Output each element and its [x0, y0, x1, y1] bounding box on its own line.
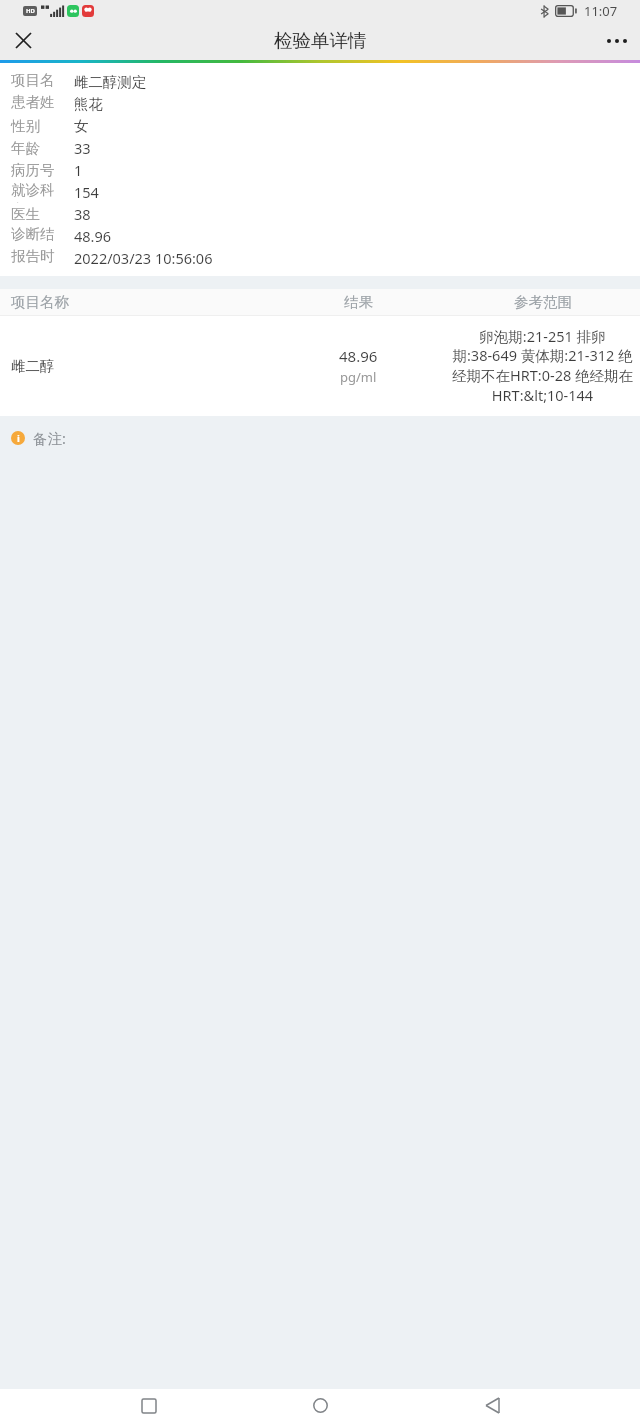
staticText: 项目名称 — [11, 71, 68, 93]
staticText: 报告时间 — [11, 247, 68, 269]
staticText: 11:07 — [584, 2, 618, 20]
staticText: 154 — [74, 182, 99, 202]
staticText: 患者姓名 — [11, 93, 68, 115]
staticText: 病历号 — [11, 161, 55, 179]
staticText: 48.96 — [74, 226, 112, 246]
staticText: 备注: — [33, 428, 66, 448]
staticText: 雌二醇测定 — [74, 73, 147, 91]
button[interactable]: Home — [297, 1389, 343, 1422]
staticText: 熊花 — [74, 95, 103, 113]
staticText: 性别 — [11, 117, 40, 135]
staticText: 女 — [74, 117, 89, 135]
staticText: 雌二醇 — [11, 357, 55, 375]
staticText: HD — [26, 7, 35, 15]
staticText: 检验单详情 — [274, 29, 367, 52]
staticText: 2022/03/23 10:56:06 — [74, 248, 213, 268]
button[interactable]: More options — [594, 21, 640, 60]
staticText: 诊断结论 — [11, 225, 68, 247]
staticText: 卵泡期:21-251 排卵期:38-649 黄体期:21-312 绝经期不在HR… — [448, 326, 637, 406]
staticText: i — [17, 432, 20, 445]
staticText: 38 — [74, 204, 91, 224]
staticText: 结果 — [344, 293, 373, 311]
button[interactable]: Close — [0, 21, 46, 60]
staticText: 项目名称 — [11, 293, 69, 311]
staticText: 48.96 — [339, 346, 378, 366]
staticText: 医生 — [11, 205, 40, 223]
staticText: 33 — [74, 138, 91, 158]
staticText: 参考范围 — [514, 293, 572, 311]
staticText: pg/ml — [340, 368, 377, 386]
button[interactable]: 雌二醇 — [0, 316, 640, 416]
staticText: 1 — [74, 160, 83, 180]
button[interactable]: Recent apps — [126, 1389, 172, 1422]
button[interactable]: Back — [469, 1389, 515, 1422]
staticText: 就诊科室 — [11, 181, 68, 203]
staticText: 年龄 — [11, 139, 40, 157]
